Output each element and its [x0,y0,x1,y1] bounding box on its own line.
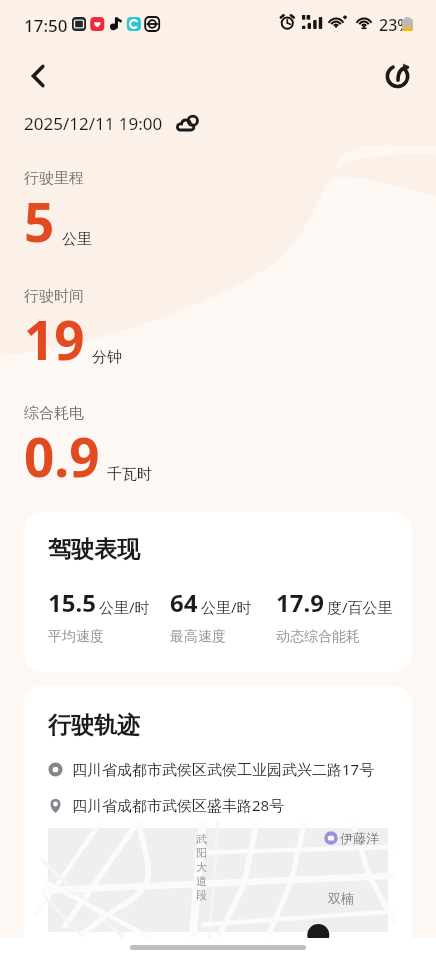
staticText: 17.9 [276,586,324,619]
staticText: 公里/时 [99,597,150,617]
staticText: 17:50 [24,14,68,37]
staticText: 综合耗电 [24,404,84,423]
button[interactable]: 驾驶表现 [24,512,412,672]
staticText: 0.9 [24,420,100,492]
staticText: 四川省成都市武侯区盛丰路28号 [72,795,285,815]
staticText: 行驶时间 [24,287,84,306]
staticText: 19 [24,303,85,375]
button[interactable]: 行驶轨迹 [24,686,412,960]
staticText: 千瓦时 [107,465,152,484]
staticText: 公里/时 [201,597,252,617]
staticText: 2025/12/11 19:00 [24,112,163,135]
staticText: 双楠 [328,890,354,906]
staticText: 伊藤洋 [340,830,379,846]
staticText: 武 [196,832,207,846]
staticText: 道 [196,874,207,888]
staticText: 分钟 [92,348,122,367]
staticText: 公里 [62,230,92,249]
staticText: 平均速度 [48,628,104,646]
staticText: 5 [24,185,55,257]
staticText: 阳 [196,846,207,860]
staticText: 驾驶表现 [48,535,140,564]
staticText: 64 [170,586,198,619]
staticText: 四川省成都市武侯区武侯工业园武兴二路17号 [72,759,375,779]
staticText: 15.5 [48,586,96,619]
staticText: 动态综合能耗 [276,628,360,646]
staticText: 段 [196,888,207,902]
staticText: 最高速度 [170,628,226,646]
staticText: 行驶轨迹 [48,711,140,740]
staticText: 行驶里程 [24,169,84,188]
staticText: 度/百公里 [327,597,393,617]
staticText: 23% [379,14,411,36]
staticText: 大 [196,860,207,874]
button[interactable]: Share [376,53,420,97]
button[interactable]: Back [16,53,60,97]
